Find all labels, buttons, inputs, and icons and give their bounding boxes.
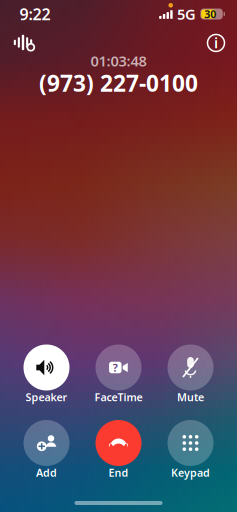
staticText: 9:22 — [19, 3, 50, 25]
button[interactable]: End — [82, 420, 154, 479]
staticText: Mute — [177, 390, 204, 404]
staticText: Add — [36, 465, 57, 480]
button[interactable]: ? — [82, 344, 154, 403]
staticText: Speaker — [25, 390, 67, 404]
staticText: 5G — [177, 4, 196, 24]
button[interactable]: Add — [10, 420, 82, 479]
button[interactable]: Voice Isolation — [0, 34, 36, 52]
button[interactable]: Speaker — [10, 344, 82, 403]
staticText: (973) 227-0100 — [39, 68, 198, 98]
button[interactable]: Mute — [154, 344, 226, 403]
staticText: End — [108, 465, 128, 480]
button[interactable]: Keypad — [154, 420, 226, 479]
staticText: ? — [113, 360, 118, 375]
staticText: FaceTime — [94, 390, 142, 404]
staticText: 30 — [204, 7, 216, 21]
button[interactable]: Call Info — [206, 33, 237, 53]
staticText: i — [214, 33, 218, 52]
staticText: 01:03:48 — [90, 51, 146, 70]
staticText: Keypad — [171, 465, 210, 480]
